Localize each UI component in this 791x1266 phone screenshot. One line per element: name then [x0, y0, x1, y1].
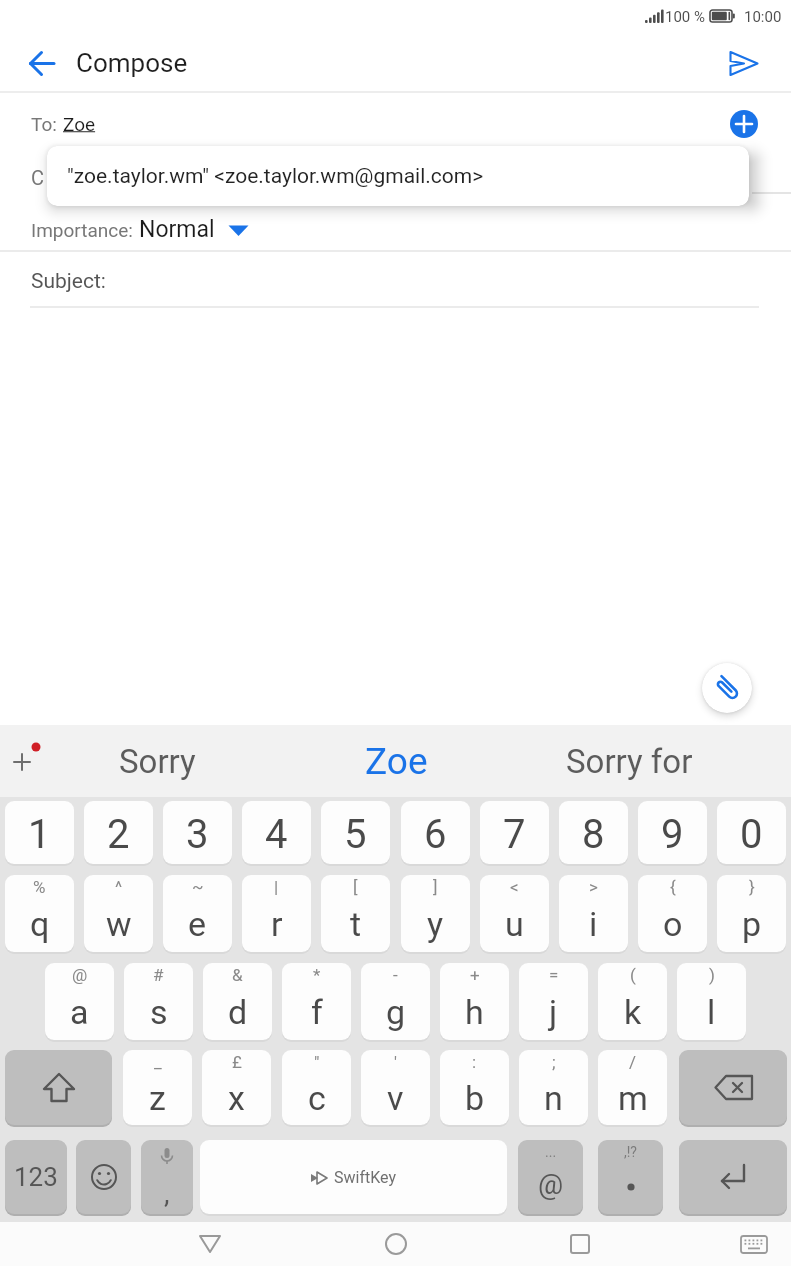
- staticText: t: [350, 904, 362, 944]
- button[interactable]: *: [282, 963, 351, 1040]
- staticText: :: [472, 1052, 477, 1072]
- button[interactable]: [76, 1140, 131, 1214]
- staticText: z: [149, 1078, 166, 1118]
- button[interactable]: "zoe.taylor.wm" <zoe.taylor.wm@gmail.com…: [47, 146, 749, 206]
- button[interactable]: >: [559, 875, 628, 952]
- button[interactable]: @: [45, 963, 114, 1040]
- button[interactable]: [29, 50, 56, 77]
- button[interactable]: ;: [519, 1050, 588, 1125]
- button[interactable]: [5, 1050, 112, 1125]
- staticText: r: [271, 904, 283, 944]
- button[interactable]: &: [203, 963, 272, 1040]
- staticText: ): [709, 965, 715, 985]
- button[interactable]: ...: [518, 1140, 583, 1214]
- staticText: m: [618, 1078, 648, 1118]
- staticText: ]: [433, 877, 438, 897]
- staticText: a: [70, 992, 89, 1032]
- staticText: |: [274, 877, 279, 897]
- staticText: Zoe: [63, 113, 96, 135]
- staticText: u: [505, 904, 524, 944]
- staticText: Normal: [139, 216, 215, 243]
- button[interactable]: 123: [5, 1140, 67, 1214]
- button[interactable]: [730, 110, 758, 138]
- staticText: @: [72, 965, 88, 985]
- button[interactable]: [729, 51, 759, 76]
- button[interactable]: 3: [163, 801, 232, 864]
- staticText: /: [629, 1052, 637, 1072]
- button[interactable]: [: [321, 875, 390, 952]
- button[interactable]: £: [202, 1050, 271, 1125]
- button[interactable]: 6: [401, 801, 470, 864]
- button[interactable]: 5: [321, 801, 390, 864]
- button[interactable]: :: [440, 1050, 509, 1125]
- button[interactable]: _: [123, 1050, 192, 1125]
- button[interactable]: 2: [84, 801, 153, 864]
- button[interactable]: |: [242, 875, 311, 952]
- button[interactable]: %: [5, 875, 74, 952]
- staticText: %: [33, 877, 46, 897]
- staticText: ...: [545, 1144, 557, 1160]
- button[interactable]: }: [717, 875, 786, 952]
- staticText: >: [589, 877, 598, 897]
- button[interactable]: Subject:: [0, 255, 760, 305]
- button[interactable]: -: [361, 963, 430, 1040]
- button[interactable]: <: [480, 875, 549, 952]
- button[interactable]: #: [124, 963, 193, 1040]
- staticText: Zoe: [365, 740, 428, 783]
- button[interactable]: ~: [163, 875, 232, 952]
- button[interactable]: [740, 1232, 768, 1260]
- staticText: &: [232, 965, 243, 985]
- button[interactable]: [679, 1050, 787, 1125]
- staticText: <: [510, 877, 519, 897]
- staticText: 123: [14, 1162, 58, 1192]
- staticText: 2: [107, 811, 130, 858]
- staticText: _: [154, 1052, 162, 1072]
- staticText: x: [228, 1078, 245, 1118]
- button[interactable]: Zoe: [286, 725, 506, 797]
- button[interactable]: 7: [480, 801, 549, 864]
- button[interactable]: ]: [401, 875, 470, 952]
- staticText: ^: [115, 877, 123, 897]
- button[interactable]: 9: [638, 801, 707, 864]
- button[interactable]: 1: [5, 801, 74, 864]
- staticText: *: [313, 965, 321, 985]
- button[interactable]: 8: [559, 801, 628, 864]
- staticText: 1: [28, 811, 51, 858]
- button[interactable]: Sorry: [47, 725, 267, 797]
- button[interactable]: [568, 1232, 592, 1256]
- button[interactable]: [228, 223, 249, 237]
- staticText: l: [707, 992, 716, 1032]
- staticText: b: [465, 1078, 485, 1118]
- button[interactable]: To:: [0, 100, 700, 148]
- button[interactable]: +: [440, 963, 509, 1040]
- button[interactable]: Sorry for: [519, 725, 739, 797]
- button[interactable]: SwiftKey: [200, 1140, 507, 1214]
- staticText: v: [387, 1078, 404, 1118]
- button[interactable]: [702, 663, 752, 713]
- staticText: SwiftKey: [334, 1168, 396, 1187]
- button[interactable]: ,: [141, 1140, 193, 1214]
- button[interactable]: [679, 1140, 787, 1214]
- staticText: ;: [552, 1052, 556, 1072]
- staticText: £: [232, 1052, 242, 1072]
- button[interactable]: =: [519, 963, 588, 1040]
- staticText: p: [742, 904, 762, 944]
- staticText: [: [353, 877, 358, 897]
- button[interactable]: [8, 739, 52, 783]
- button[interactable]: ': [361, 1050, 430, 1125]
- staticText: =: [549, 965, 559, 985]
- button[interactable]: /: [598, 1050, 667, 1125]
- staticText: #: [153, 965, 164, 985]
- button[interactable]: ^: [84, 875, 153, 952]
- button[interactable]: ,!?: [598, 1140, 663, 1214]
- button[interactable]: 4: [242, 801, 311, 864]
- button[interactable]: (: [598, 963, 667, 1040]
- staticText: e: [188, 904, 207, 944]
- button[interactable]: {: [638, 875, 707, 952]
- button[interactable]: ): [677, 963, 746, 1040]
- button[interactable]: 0: [717, 801, 786, 864]
- button[interactable]: ": [282, 1050, 351, 1125]
- button[interactable]: [198, 1232, 222, 1256]
- button[interactable]: [384, 1232, 408, 1256]
- staticText: ": [314, 1052, 320, 1072]
